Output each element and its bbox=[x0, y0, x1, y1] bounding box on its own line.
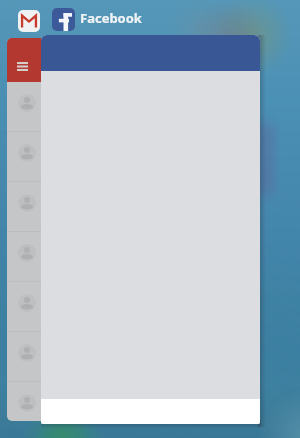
button[interactable] bbox=[7, 282, 117, 332]
button[interactable]: Open navigation drawer bbox=[7, 38, 117, 421]
button[interactable] bbox=[7, 382, 117, 421]
button[interactable] bbox=[7, 132, 117, 182]
button[interactable] bbox=[41, 35, 260, 424]
button[interactable] bbox=[7, 182, 117, 232]
button[interactable] bbox=[7, 332, 117, 382]
button[interactable]: Open navigation drawer bbox=[15, 60, 30, 73]
button[interactable]: Gmail bbox=[18, 10, 40, 32]
button[interactable] bbox=[7, 82, 117, 132]
staticText: Facebook bbox=[80, 9, 142, 27]
button[interactable] bbox=[7, 232, 117, 282]
button[interactable]: Facebook bbox=[52, 8, 75, 31]
